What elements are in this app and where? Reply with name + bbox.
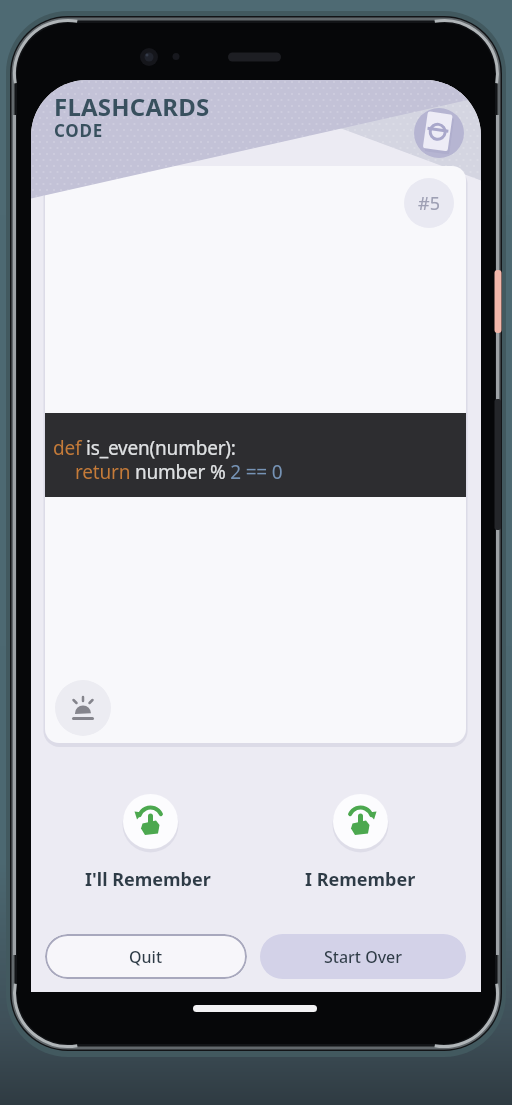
staticText: Quit: [129, 946, 163, 968]
button[interactable]: [333, 794, 388, 849]
button[interactable]: Start Over: [260, 934, 466, 979]
staticText: #5: [418, 191, 440, 216]
staticText: Start Over: [324, 946, 403, 968]
staticText: return number % 2 == 0: [75, 459, 283, 485]
staticText: I Remember: [305, 867, 416, 891]
button[interactable]: [414, 108, 464, 158]
staticText: FLASHCARDS: [54, 90, 210, 123]
button[interactable]: [123, 794, 178, 849]
staticText: I'll Remember: [85, 867, 211, 891]
staticText: def is_even(number):: [53, 435, 236, 461]
staticText: CODE: [54, 119, 104, 142]
button[interactable]: Quit: [45, 934, 247, 979]
button[interactable]: [55, 680, 111, 736]
